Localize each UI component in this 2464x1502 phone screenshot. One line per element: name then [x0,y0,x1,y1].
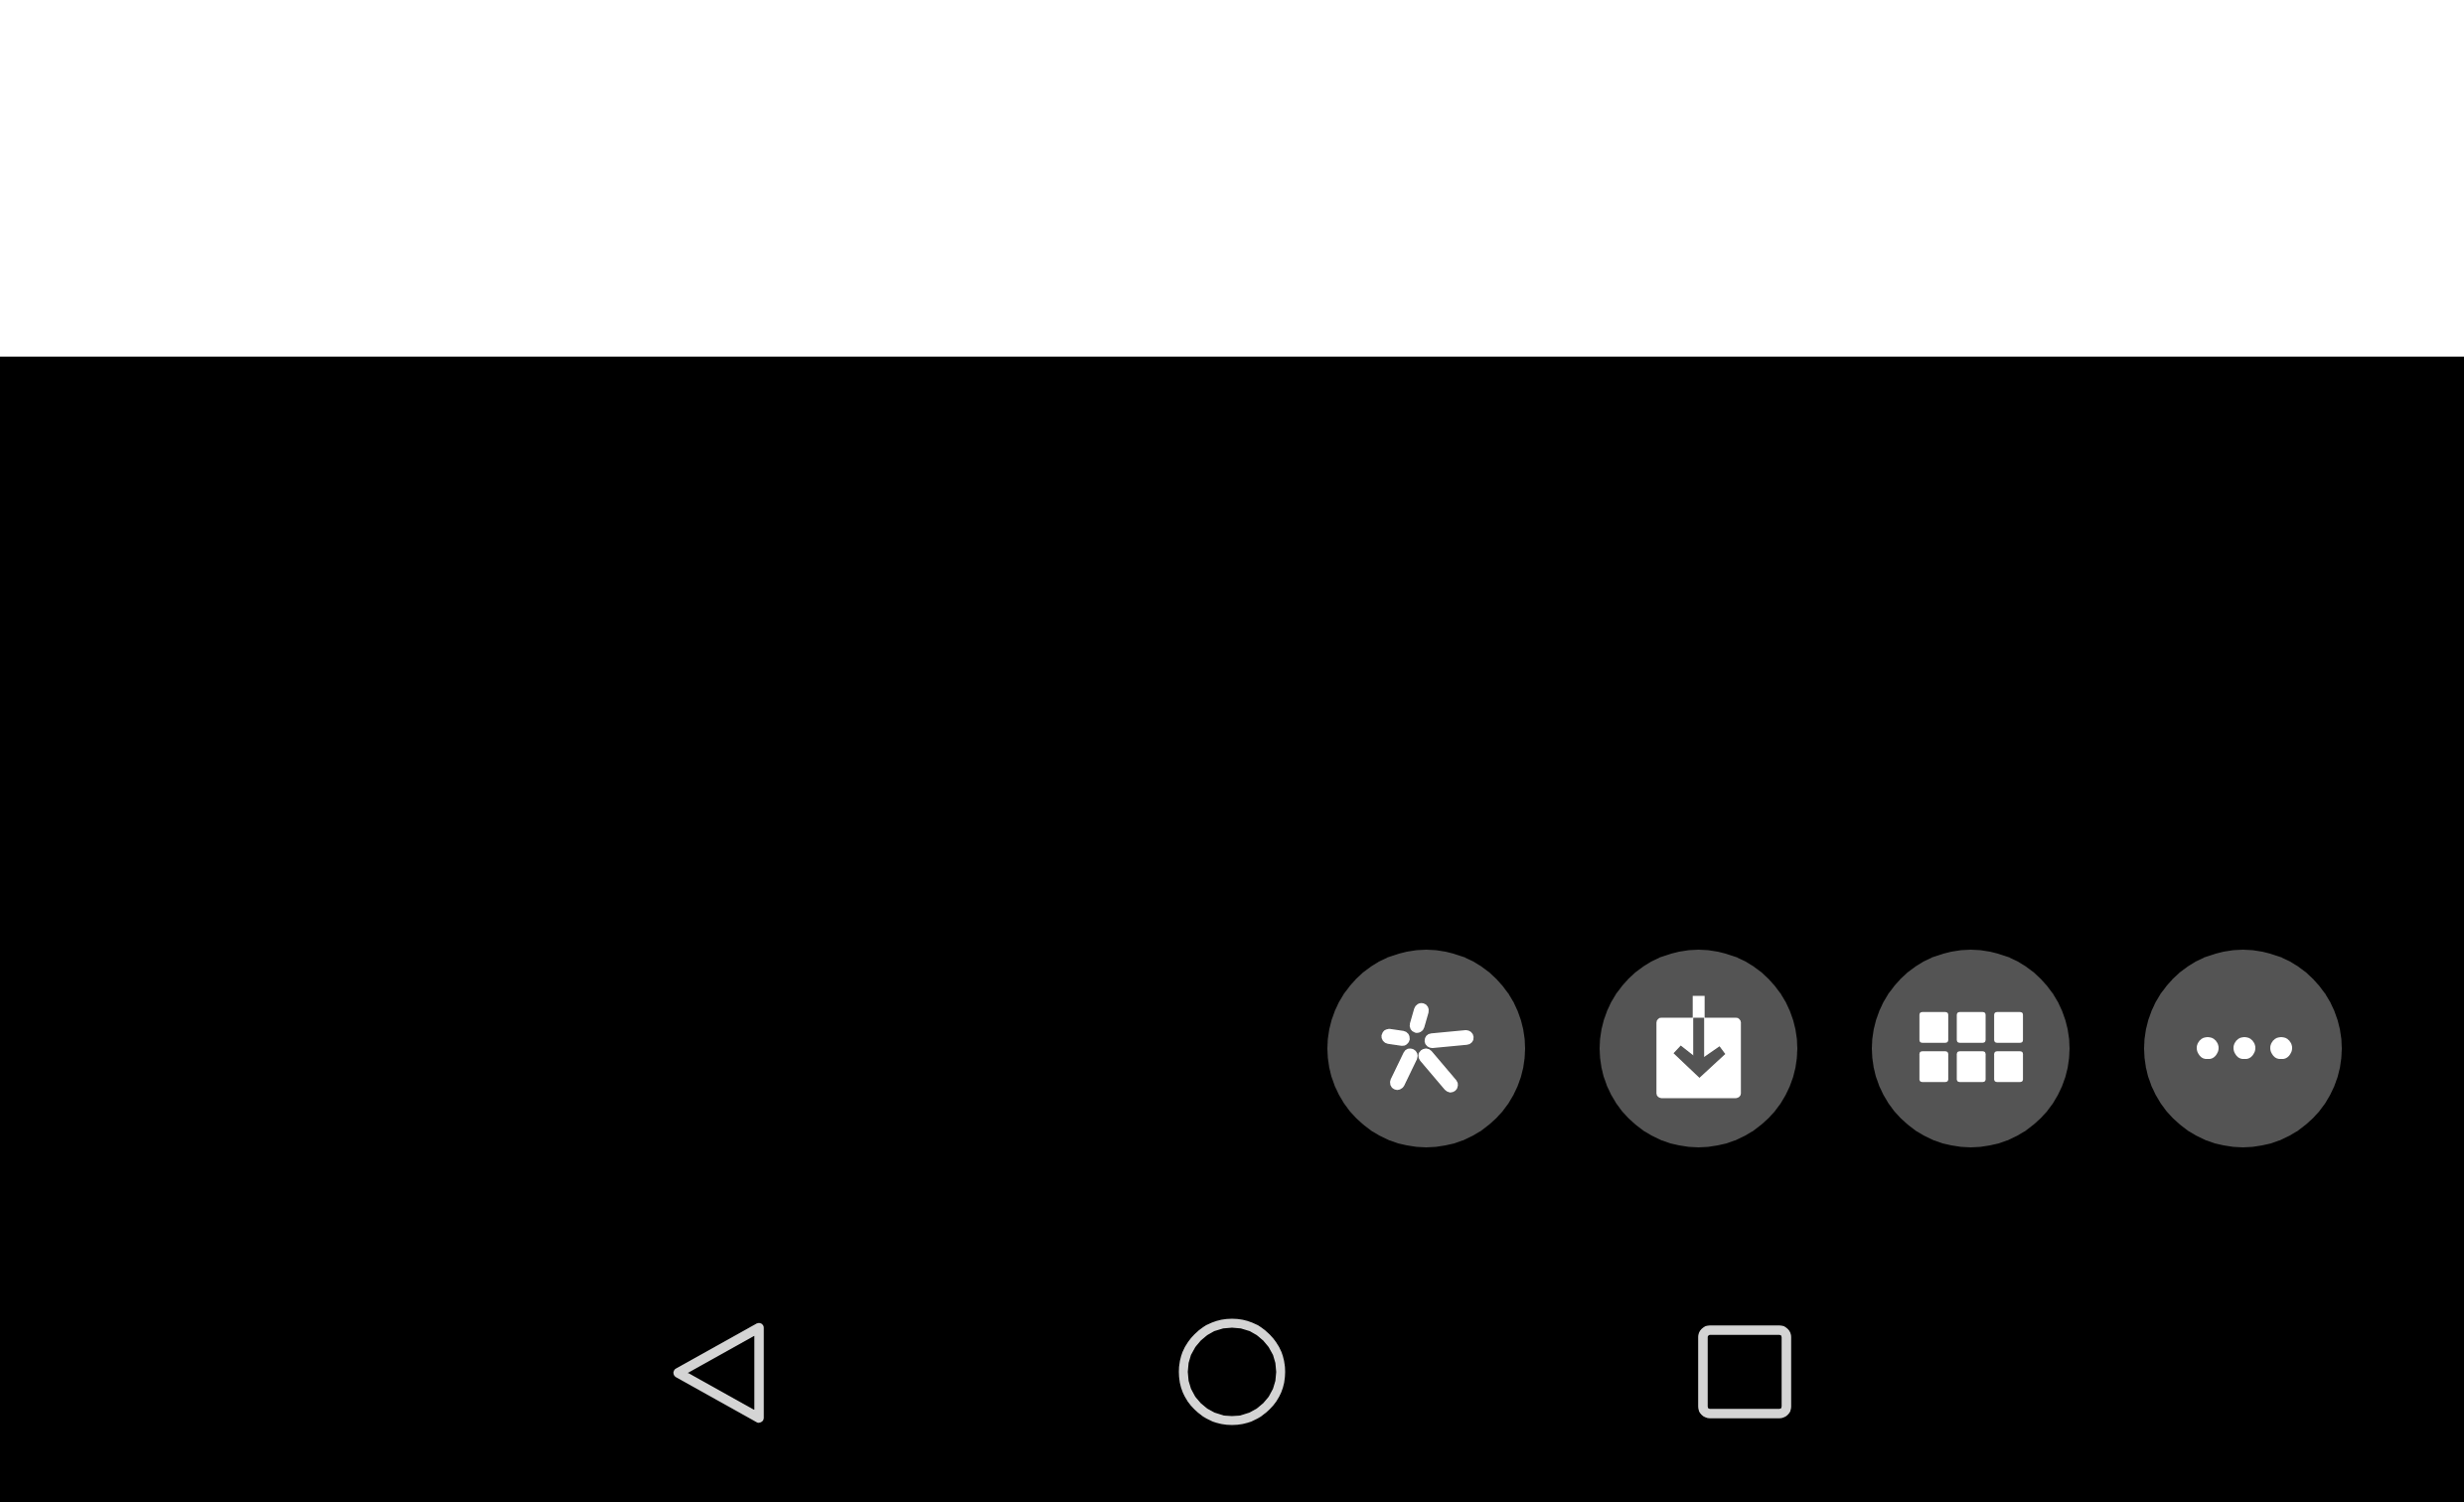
button[interactable]: Recent apps [1660,1287,1829,1456]
button[interactable]: Save [1600,950,1797,1147]
button[interactable]: Highlight [1327,950,1525,1147]
button[interactable]: Back [634,1288,803,1457]
button[interactable]: More options [2144,950,2342,1147]
button[interactable]: Home [1148,1287,1316,1456]
button[interactable]: Apps [1872,950,2070,1147]
